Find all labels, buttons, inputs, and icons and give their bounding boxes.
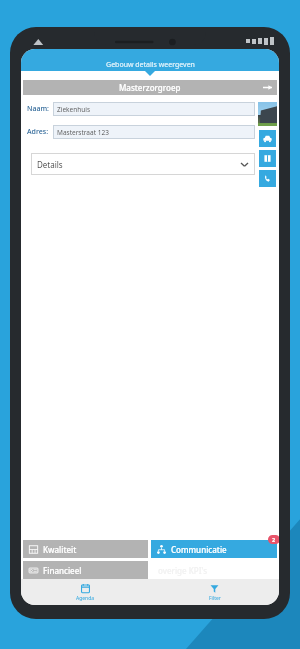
button[interactable]: Kaart	[259, 150, 276, 167]
staticText: Communicatie	[171, 544, 227, 555]
button[interactable]: Agenda	[21, 579, 150, 605]
button[interactable]: Communicatie	[151, 540, 277, 558]
staticText: Financieel	[43, 565, 82, 576]
button[interactable]: Kwaliteit	[23, 540, 148, 558]
button[interactable]: Bellen	[259, 170, 276, 187]
staticText: Agenda	[76, 595, 95, 602]
button[interactable]: Details	[31, 153, 255, 175]
button[interactable]: Ziekenhuis	[53, 102, 255, 116]
button[interactable]: Route	[259, 130, 276, 147]
staticText: Ziekenhuis	[57, 105, 91, 114]
staticText: Kwaliteit	[43, 544, 77, 555]
staticText: Naam:	[27, 104, 53, 114]
button[interactable]: Filter	[150, 579, 279, 605]
staticText: Masterstraat 123	[57, 128, 109, 137]
staticText: 2	[272, 536, 276, 543]
other: Volgende	[263, 83, 272, 92]
staticText: Gebouw details weergeven	[106, 60, 195, 70]
button[interactable]: Masterstraat 123	[53, 125, 255, 139]
staticText: Masterzorgroep	[119, 82, 181, 93]
staticText: overige KPI's	[158, 565, 208, 576]
button[interactable]	[258, 102, 277, 126]
staticText: Adres:	[27, 127, 53, 137]
staticText: Details	[37, 159, 63, 170]
button[interactable]: Masterzorgroep	[23, 80, 277, 95]
staticText: Filter	[209, 595, 221, 602]
button[interactable]: Financieel	[23, 561, 148, 579]
